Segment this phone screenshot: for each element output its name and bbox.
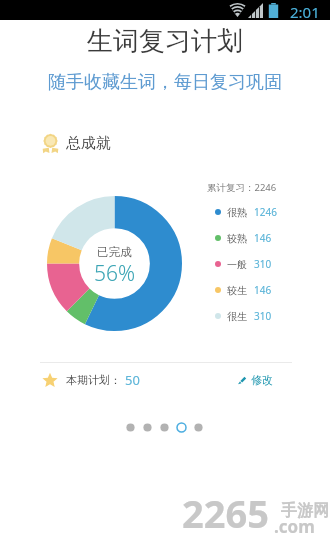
staticText: 很生 xyxy=(227,310,247,323)
staticText: 2265 xyxy=(182,487,269,539)
button[interactable]: 很生 xyxy=(215,303,285,329)
button[interactable]: 一般 xyxy=(215,251,285,277)
staticText: 146 xyxy=(254,283,272,297)
button[interactable]: 总成就 xyxy=(42,133,111,154)
button[interactable] xyxy=(190,422,207,433)
staticText: 310 xyxy=(254,257,272,271)
button[interactable] xyxy=(139,422,156,433)
button[interactable] xyxy=(122,422,139,433)
staticText: 生词复习计划 xyxy=(0,25,330,58)
staticText: 56% xyxy=(94,259,136,288)
button[interactable]: 较生 xyxy=(215,277,285,303)
staticText: 一般 xyxy=(227,258,247,271)
staticText: 较熟 xyxy=(227,232,247,245)
button[interactable]: 很熟 xyxy=(215,199,285,225)
button[interactable] xyxy=(156,422,173,433)
button[interactable]: 较熟 xyxy=(215,225,285,251)
staticText: 50 xyxy=(125,371,140,389)
staticText: 2:01 xyxy=(290,2,320,22)
staticText: 很熟 xyxy=(227,206,247,219)
staticText: 本期计划： xyxy=(66,373,121,387)
staticText: 总成就 xyxy=(66,134,111,153)
button[interactable]: 修改 xyxy=(237,373,273,387)
staticText: 310 xyxy=(254,309,272,323)
staticText: 已完成 xyxy=(97,245,132,259)
button[interactable] xyxy=(173,422,190,433)
staticText: .com xyxy=(274,515,315,538)
staticText: 累计复习：2246 xyxy=(207,181,277,194)
staticText: 手游网 xyxy=(281,501,329,521)
staticText: 较生 xyxy=(227,284,247,297)
staticText: 146 xyxy=(254,231,272,245)
staticText: 随手收藏生词，每日复习巩固 xyxy=(0,71,330,94)
staticText: 修改 xyxy=(251,373,273,387)
staticText: 1246 xyxy=(254,205,277,219)
